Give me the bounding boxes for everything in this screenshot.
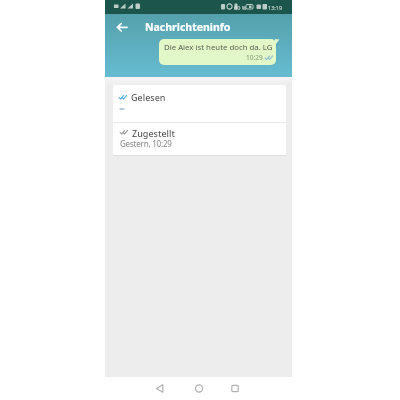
button[interactable] <box>188 377 210 400</box>
button[interactable]: Gelesen <box>113 85 286 121</box>
button[interactable]: Die Alex ist heute doch da. LG <box>159 39 276 65</box>
button[interactable] <box>115 20 137 36</box>
staticText: 60 % <box>234 4 247 11</box>
staticText: 13:19 <box>268 4 283 11</box>
staticText: Nachrichteninfo <box>145 20 231 34</box>
staticText: 10:29 <box>246 53 263 62</box>
staticText: Die Alex ist heute doch da. LG <box>164 42 273 53</box>
button[interactable]: Zugestellt <box>113 123 286 155</box>
button[interactable] <box>224 377 246 400</box>
button[interactable] <box>149 377 171 400</box>
staticText: Gelesen <box>131 91 166 103</box>
staticText: Zugestellt <box>132 127 175 139</box>
staticText: Gestern, 10:29 <box>120 138 172 149</box>
